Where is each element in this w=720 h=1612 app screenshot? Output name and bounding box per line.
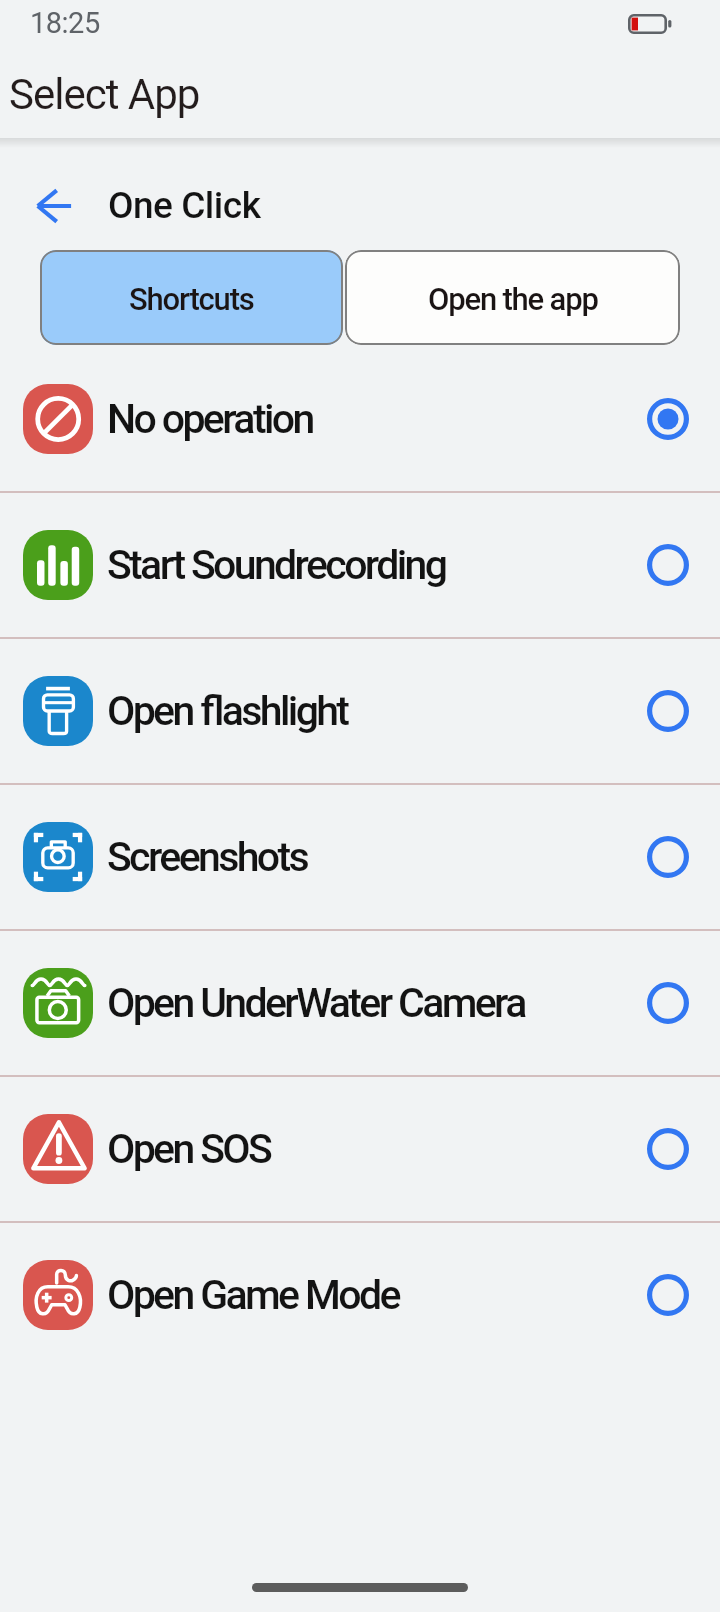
staticText: Shortcuts [129,281,254,317]
button[interactable]: Open flashlight [0,639,720,783]
button[interactable]: Shortcuts [40,250,343,345]
button[interactable]: Open the app [345,250,680,345]
button[interactable]: Open UnderWater Camera [0,931,720,1075]
button[interactable]: No operation [0,347,720,491]
staticText: Start Soundrecording [107,541,615,589]
staticText: Open UnderWater Camera [107,979,615,1027]
button[interactable]: Open Game Mode [0,1223,720,1367]
button[interactable]: Start Soundrecording [0,493,720,637]
staticText: Open Game Mode [107,1271,615,1319]
staticText: Open SOS [107,1125,615,1173]
button[interactable]: Screenshots [0,785,720,929]
staticText: Open the app [428,281,598,317]
staticText: Screenshots [107,833,615,881]
staticText: No operation [107,395,615,443]
staticText: One Click [108,184,261,227]
staticText: Open flashlight [107,687,615,735]
staticText: 18:25 [30,6,100,40]
button[interactable]: Back [27,178,83,234]
staticText: Select App [9,70,200,119]
button[interactable]: Open SOS [0,1077,720,1221]
